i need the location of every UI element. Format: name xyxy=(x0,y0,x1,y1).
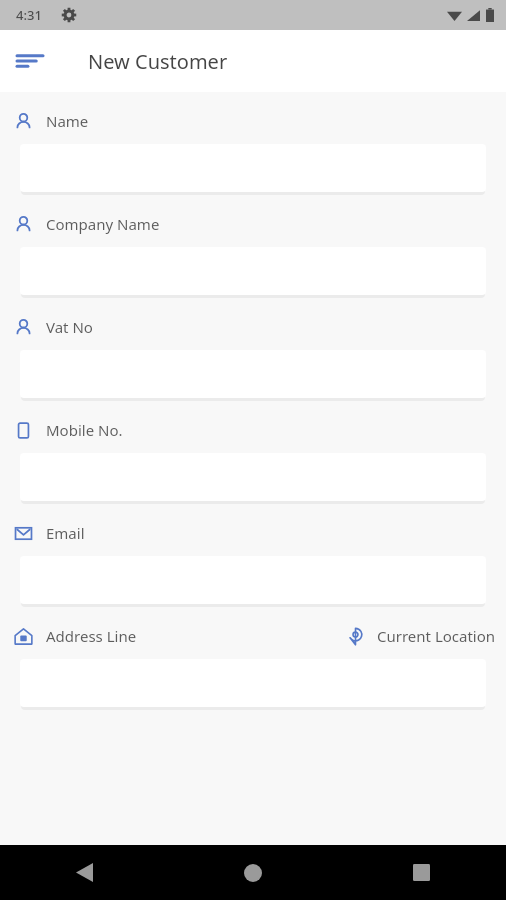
staticText: 4:31 xyxy=(16,6,42,24)
button[interactable]: Recent apps xyxy=(337,845,506,900)
button[interactable]: Current Location xyxy=(346,626,496,646)
button[interactable]: Back xyxy=(0,845,168,900)
staticText: Vat No xyxy=(46,317,93,337)
staticText: Company Name xyxy=(46,214,160,234)
staticText: New Customer xyxy=(88,48,228,75)
staticText: Email xyxy=(46,523,85,543)
button[interactable]: Open navigation menu xyxy=(4,35,56,87)
staticText: Address Line xyxy=(46,626,137,646)
button[interactable]: Home xyxy=(168,845,337,900)
staticText: Mobile No. xyxy=(46,420,123,440)
staticText: Current Location xyxy=(377,626,496,646)
staticText: Name xyxy=(46,111,89,131)
